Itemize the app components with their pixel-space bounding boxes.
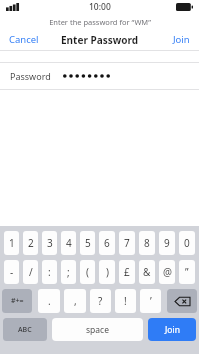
staticText: 8 (144, 236, 150, 250)
staticText: Enter Password (61, 33, 139, 47)
staticText: ( (86, 265, 89, 279)
staticText: Join (165, 324, 180, 336)
button[interactable]: 0 (179, 231, 195, 255)
button[interactable]: 9 (159, 231, 175, 255)
button[interactable]: Backspace (167, 289, 197, 313)
button[interactable]: ’ (140, 289, 161, 313)
staticText: #+= (11, 296, 24, 306)
staticText: 9 (164, 236, 170, 250)
staticText: 3 (47, 236, 53, 250)
button[interactable]: 2 (23, 231, 38, 255)
staticText: £ (124, 265, 130, 279)
staticText: 2 (28, 236, 34, 250)
staticText: ” (185, 265, 189, 279)
staticText: Enter the password for “WM” (49, 17, 151, 27)
button[interactable]: Join (148, 318, 196, 341)
staticText: 6 (104, 236, 110, 250)
button[interactable]: space (52, 318, 143, 341)
staticText: Cancel (9, 33, 39, 46)
staticText: 0 (184, 236, 190, 250)
button[interactable]: ; (61, 260, 76, 284)
button[interactable]: 8 (139, 231, 155, 255)
button[interactable]: #+= (2, 289, 32, 313)
button[interactable]: 6 (99, 231, 115, 255)
button[interactable]: 7 (119, 231, 135, 255)
staticText: 4 (66, 236, 72, 250)
staticText: 10:00 (89, 1, 111, 13)
staticText: ABC (18, 325, 32, 335)
staticText: : (48, 265, 51, 279)
button[interactable]: - (4, 260, 19, 284)
staticText: ) (106, 265, 109, 279)
staticText: Join (173, 33, 190, 46)
staticText: 5 (85, 236, 91, 250)
button[interactable]: £ (119, 260, 135, 284)
staticText: 7 (124, 236, 130, 250)
button[interactable]: ABC (3, 318, 47, 341)
button[interactable]: ) (99, 260, 115, 284)
button[interactable]: & (139, 260, 155, 284)
staticText: 1 (9, 236, 15, 250)
button[interactable]: ( (80, 260, 95, 284)
staticText: . (48, 294, 51, 308)
staticText: Password (10, 70, 51, 82)
staticText: ’ (150, 294, 152, 308)
button[interactable]: 3 (42, 231, 57, 255)
button[interactable]: ! (115, 289, 136, 313)
button[interactable]: Password (0, 63, 199, 89)
button[interactable]: Join (164, 30, 199, 49)
staticText: - (10, 265, 14, 279)
staticText: / (29, 265, 33, 279)
staticText: ? (98, 294, 103, 308)
button[interactable]: 1 (4, 231, 19, 255)
staticText: @ (163, 265, 172, 279)
staticText: ; (67, 265, 70, 279)
button[interactable]: ? (90, 289, 111, 313)
staticText: & (143, 265, 151, 279)
button[interactable]: Cancel (0, 30, 48, 49)
staticText: space (86, 324, 109, 336)
button[interactable]: . (38, 289, 60, 313)
button[interactable]: 5 (80, 231, 95, 255)
button[interactable]: , (64, 289, 86, 313)
button[interactable]: ” (179, 260, 195, 284)
button[interactable]: : (42, 260, 57, 284)
button[interactable]: / (23, 260, 38, 284)
staticText: ! (124, 294, 127, 308)
button[interactable]: @ (159, 260, 175, 284)
button[interactable]: 4 (61, 231, 76, 255)
staticText: , (74, 294, 77, 308)
